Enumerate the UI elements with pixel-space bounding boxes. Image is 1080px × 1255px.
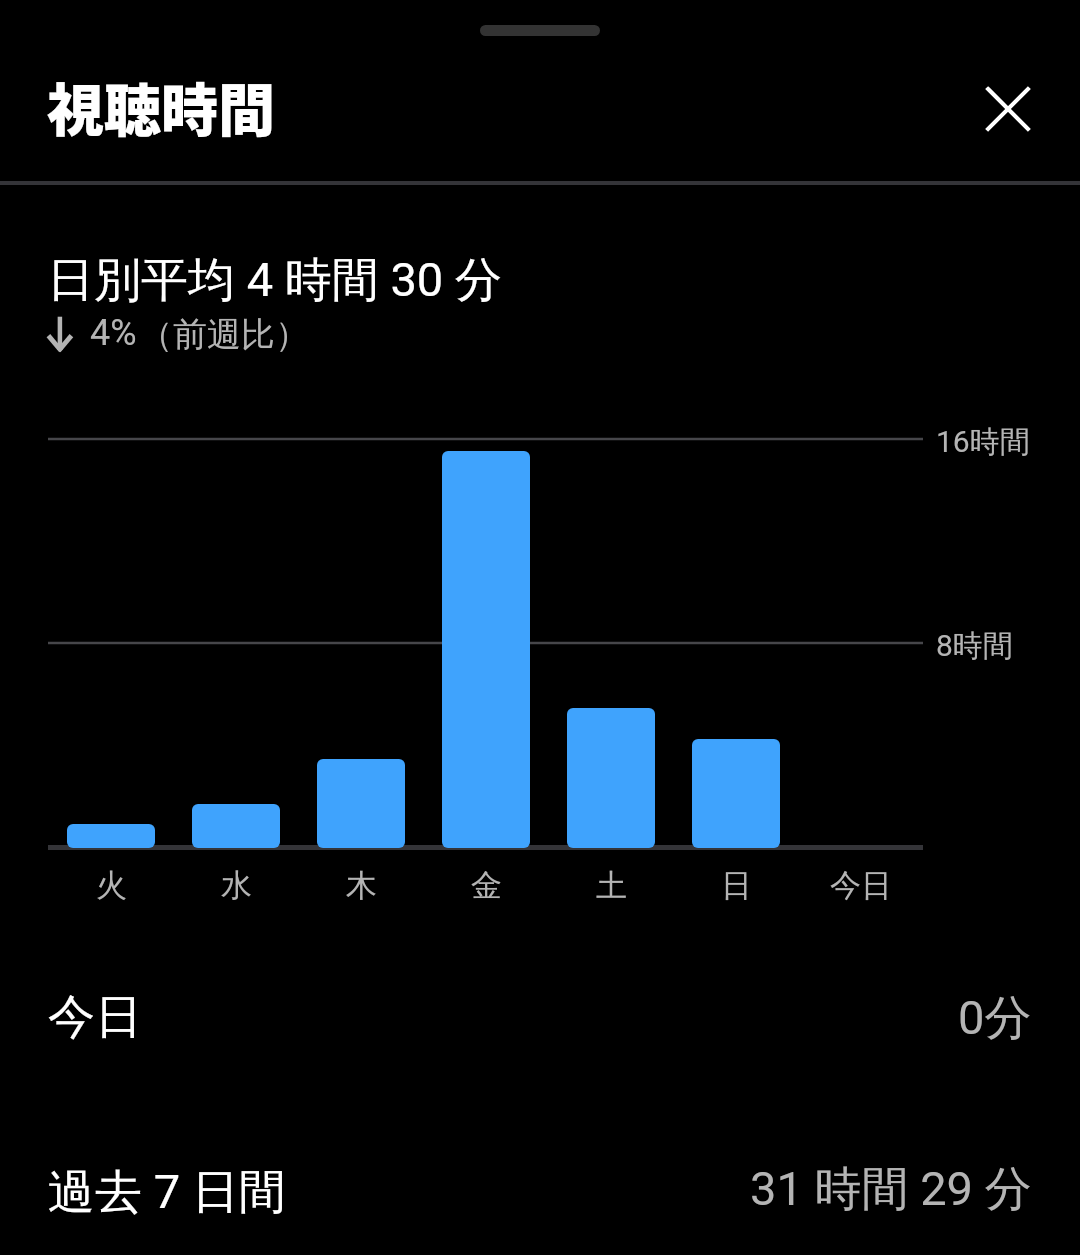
staticText: 木 <box>346 866 377 905</box>
staticText: 火 <box>96 866 127 905</box>
staticText: 31 時間 29 分 <box>750 1160 1032 1219</box>
other: Decrease <box>47 315 73 352</box>
staticText: 4% <box>90 312 137 354</box>
staticText: 視聴時間 <box>47 65 275 148</box>
staticText: 今日 <box>830 866 892 905</box>
staticText: 水 <box>221 866 252 905</box>
staticText: 今日 <box>48 988 142 1047</box>
staticText: 日 <box>721 866 752 905</box>
staticText: 金 <box>471 866 502 905</box>
staticText: 0分 <box>958 989 1032 1048</box>
staticText: 日別平均 4 時間 30 分 <box>47 251 502 310</box>
staticText: 16時間 <box>936 423 1030 461</box>
staticText: （前週比） <box>139 313 309 356</box>
staticText: 8時間 <box>936 627 1013 665</box>
staticText: 過去 7 日間 <box>48 1163 286 1222</box>
staticText: 土 <box>596 866 627 905</box>
button[interactable]: Close <box>956 57 1060 161</box>
